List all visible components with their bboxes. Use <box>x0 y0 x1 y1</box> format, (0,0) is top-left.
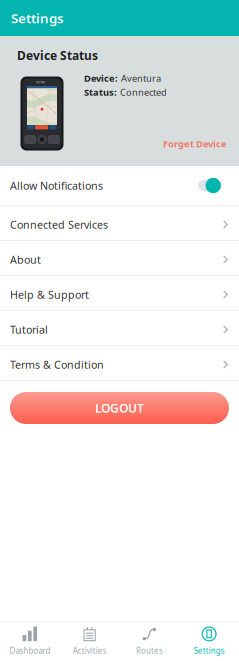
button[interactable]: Settings <box>179 622 239 661</box>
staticText: Allow Notifications <box>10 178 103 193</box>
staticText: Help & Support <box>10 287 89 302</box>
staticText: Forget Device <box>163 137 227 150</box>
button[interactable]: Routes <box>119 622 179 661</box>
staticText: Tutorial <box>10 322 48 337</box>
button[interactable]: Forget Device <box>155 132 235 155</box>
staticText: Status: <box>84 86 117 98</box>
staticText: Device Status <box>17 47 98 63</box>
staticText: Connected <box>120 86 167 98</box>
button[interactable]: Tutorial <box>0 311 239 346</box>
staticText: TwoNav <box>35 80 44 84</box>
button[interactable]: About <box>0 241 239 276</box>
button[interactable]: LOGOUT <box>0 381 239 424</box>
staticText: Settings <box>11 9 64 27</box>
button[interactable]: Allow Notifications toggle <box>198 176 223 194</box>
staticText: Activities <box>73 645 107 656</box>
staticText: Terms & Condition <box>10 357 104 372</box>
staticText: Routes <box>136 645 163 656</box>
staticText: Device: <box>84 72 118 84</box>
button[interactable]: Help & Support <box>0 276 239 311</box>
button[interactable]: Dashboard <box>0 622 60 661</box>
button[interactable]: Connected Services <box>0 206 239 241</box>
staticText: Aventura <box>121 72 161 84</box>
staticText: Connected Services <box>10 217 108 232</box>
staticText: About <box>10 252 41 267</box>
button[interactable]: Activities <box>60 622 120 661</box>
staticText: LOGOUT <box>95 400 144 416</box>
button[interactable]: Terms & Condition <box>0 346 239 381</box>
staticText: Dashboard <box>9 645 50 656</box>
staticText: Settings <box>194 645 225 656</box>
